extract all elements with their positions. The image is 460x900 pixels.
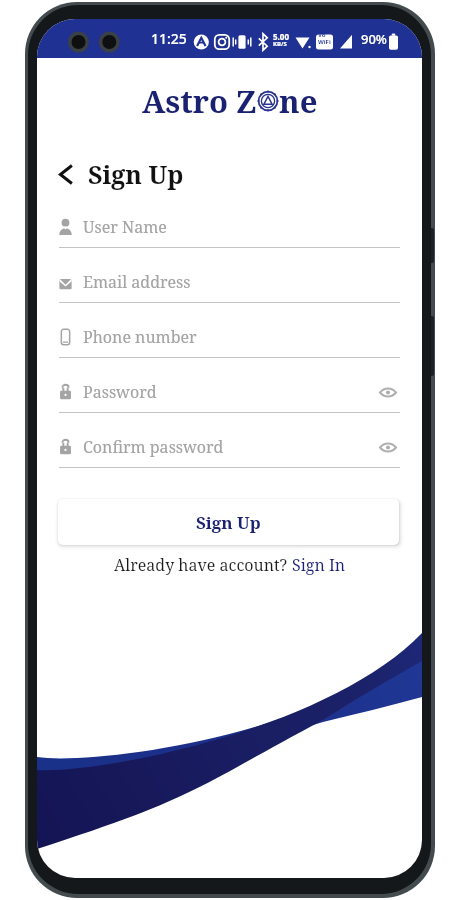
staticText: Phone number xyxy=(83,326,197,348)
button[interactable]: Sign In xyxy=(292,554,346,576)
staticText: Password xyxy=(83,381,157,403)
staticText: Sign Up xyxy=(196,511,261,534)
button[interactable]: Show password xyxy=(376,435,400,459)
button[interactable]: User Name xyxy=(59,199,400,247)
staticText: 11:25 xyxy=(151,29,187,48)
staticText: 90% xyxy=(361,30,387,48)
button[interactable]: Sign Up xyxy=(58,499,399,545)
staticText: User Name xyxy=(83,216,167,238)
button[interactable]: Email address xyxy=(59,254,400,302)
staticText: 5.00 xyxy=(273,31,289,42)
button[interactable]: Show password xyxy=(376,380,400,404)
staticText: Sign Up xyxy=(88,157,184,191)
staticText: ne xyxy=(279,80,318,122)
button[interactable]: Password xyxy=(59,364,400,412)
button[interactable]: Confirm password xyxy=(59,419,400,467)
staticText: Astro Z xyxy=(142,80,257,122)
button[interactable]: Back xyxy=(51,159,81,189)
staticText: Vo xyxy=(318,31,326,39)
staticText: Email address xyxy=(83,271,191,293)
staticText: KB/S xyxy=(273,40,287,48)
staticText: WiFi xyxy=(318,38,331,46)
button[interactable]: Phone number xyxy=(59,309,400,357)
staticText: Already have account? xyxy=(114,554,292,576)
staticText: Confirm password xyxy=(83,436,224,458)
